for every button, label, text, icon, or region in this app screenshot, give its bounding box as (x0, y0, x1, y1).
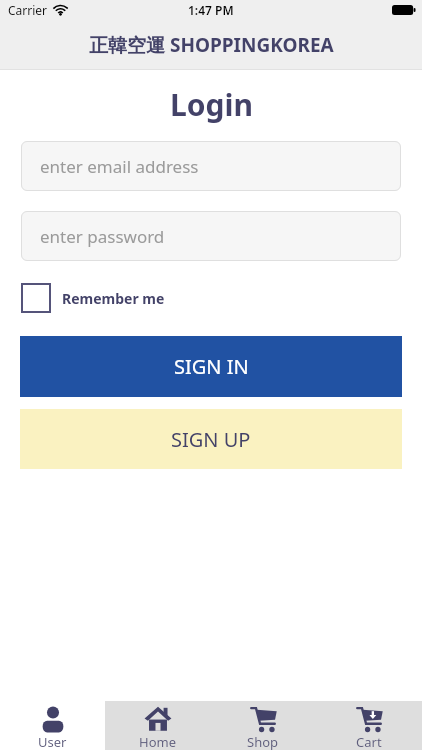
staticText: SIGN IN (174, 353, 249, 380)
staticText: 1:47 PM (188, 2, 234, 18)
staticText: User (38, 733, 67, 750)
button[interactable]: enter email address (21, 141, 401, 191)
staticText: Home (139, 733, 176, 750)
button[interactable]: enter password (21, 211, 401, 261)
button[interactable]: Home (105, 701, 210, 750)
button[interactable]: User (0, 701, 105, 750)
staticText: Login (170, 84, 253, 125)
button[interactable]: Remember me (21, 283, 165, 313)
button[interactable]: SIGN IN (20, 336, 402, 397)
staticText: Remember me (62, 289, 165, 308)
staticText: Shop (247, 733, 279, 750)
staticText: SIGN UP (171, 426, 251, 453)
button[interactable]: Cart (316, 701, 422, 750)
button[interactable]: SIGN UP (20, 409, 402, 469)
staticText: enter email address (40, 155, 199, 178)
staticText: enter password (40, 225, 165, 248)
staticText: Cart (356, 733, 382, 750)
button[interactable]: Shop (210, 701, 316, 750)
staticText: 正韓空運 SHOPPINGKOREA (89, 32, 334, 58)
staticText: Carrier (8, 2, 48, 18)
